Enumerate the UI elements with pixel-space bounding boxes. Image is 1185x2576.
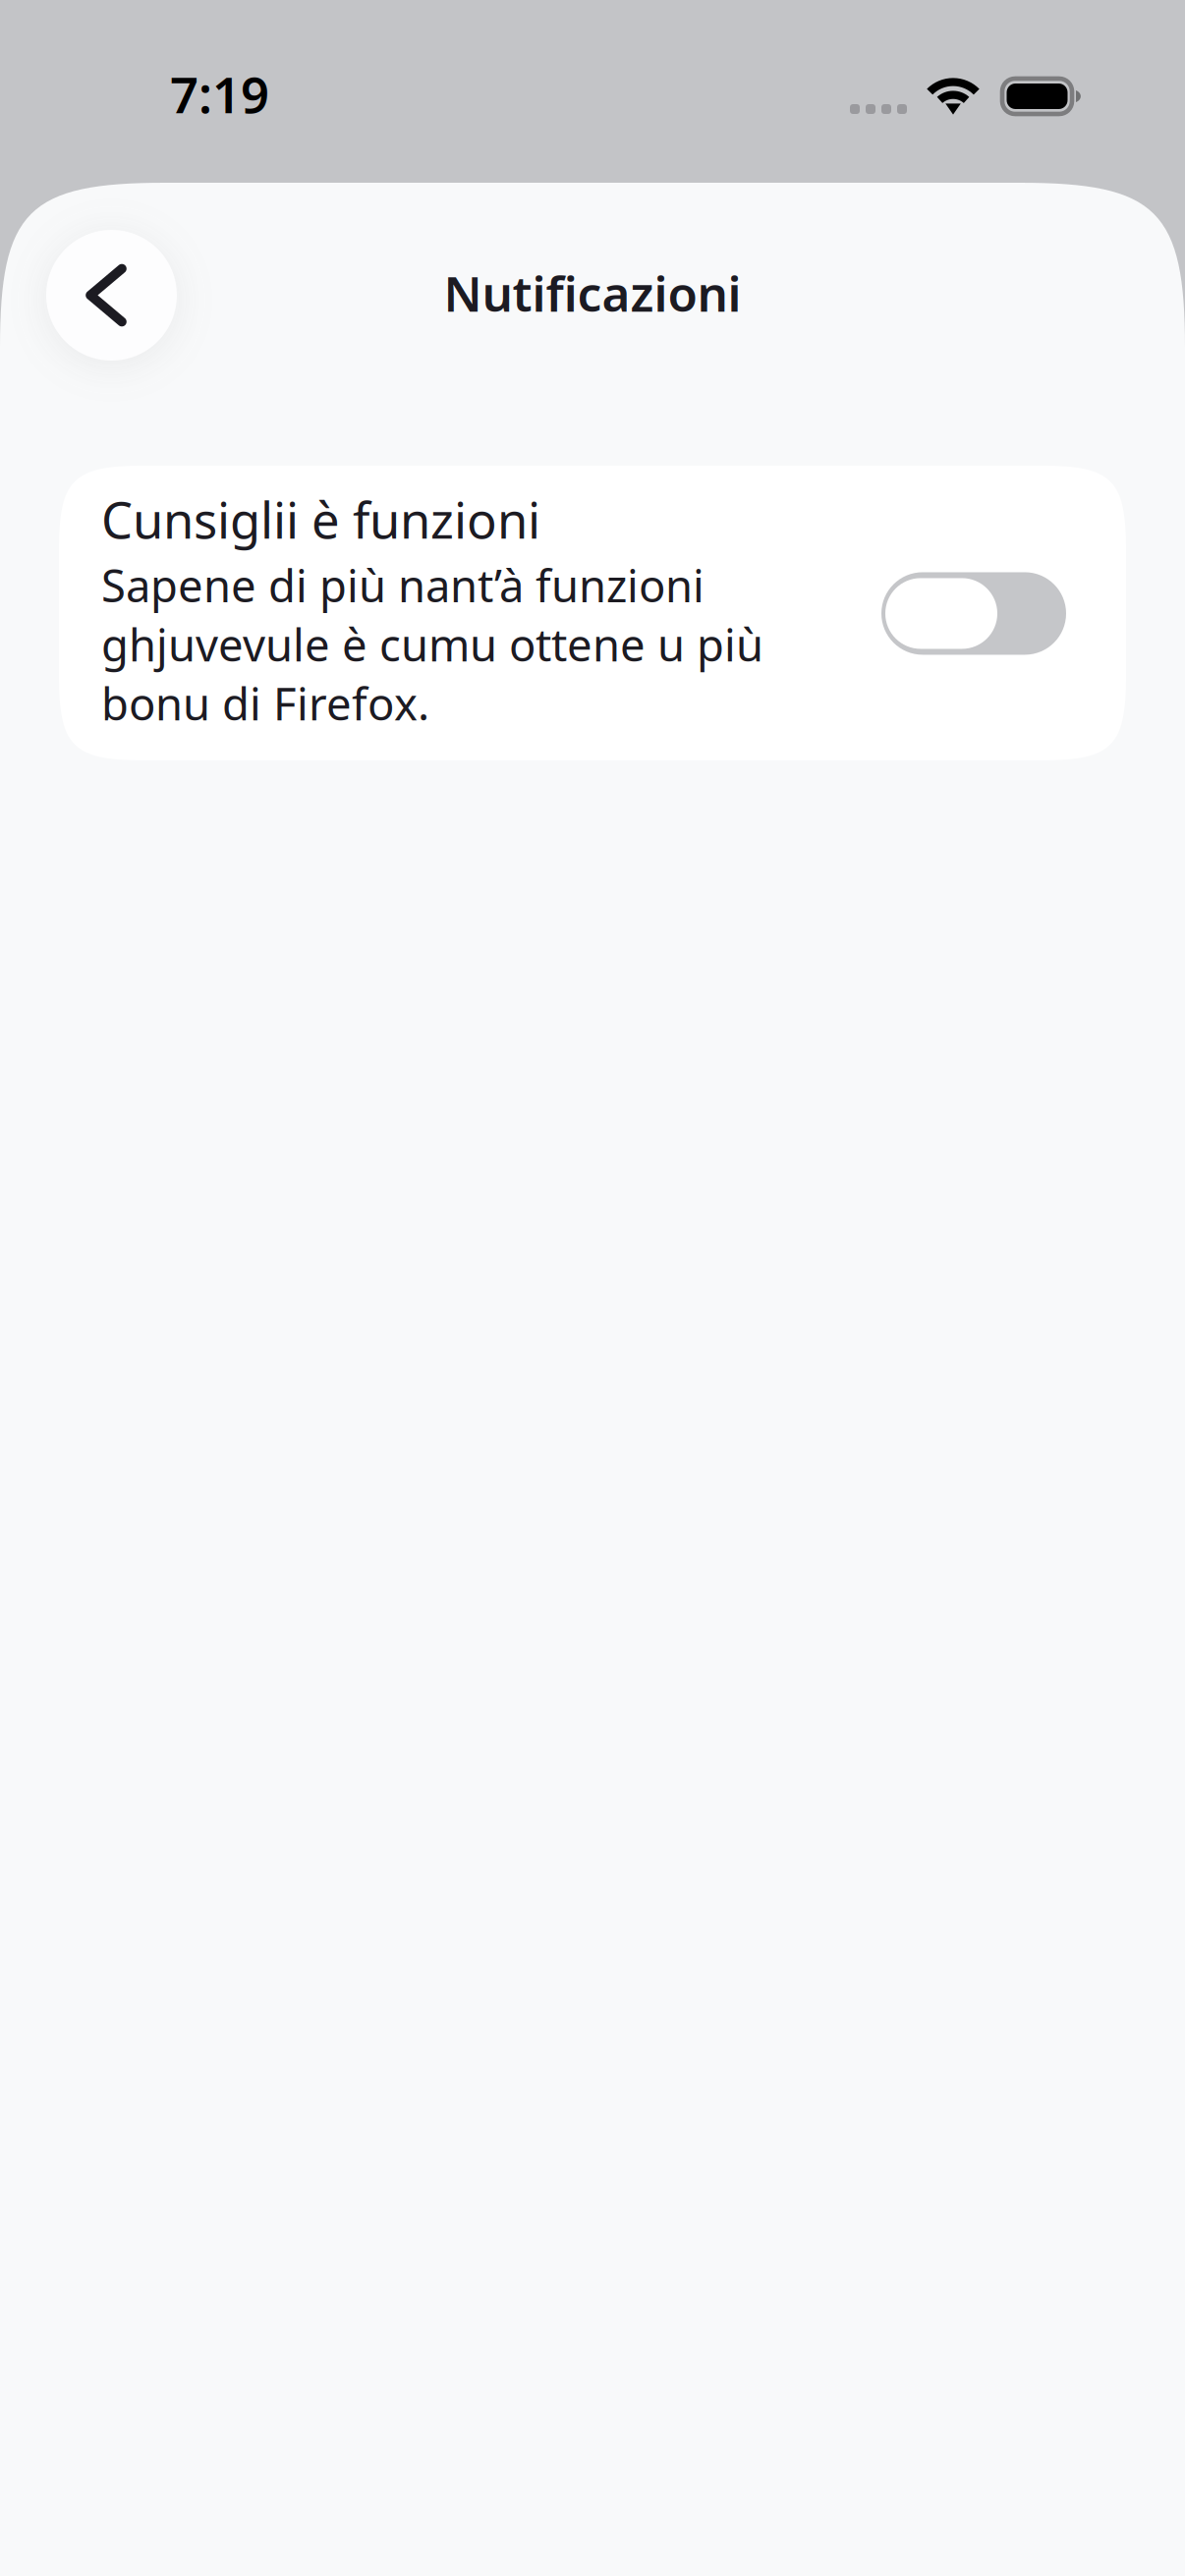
staticText: Cunsiglii è funzioni bbox=[101, 486, 540, 552]
button[interactable]: Back bbox=[46, 230, 177, 361]
staticText: 7:19 bbox=[170, 61, 269, 127]
staticText: Sapene di più nant’à funzioni ghjuvevule… bbox=[101, 555, 763, 733]
staticText: Nutificazioni bbox=[444, 261, 741, 325]
button[interactable]: Cunsiglii è funzioni bbox=[59, 466, 1126, 760]
